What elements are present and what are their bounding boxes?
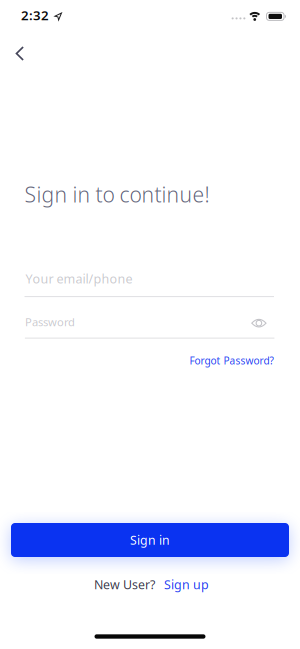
button[interactable]: Forgot Password? <box>189 354 273 367</box>
staticText: 2:32 <box>21 6 49 24</box>
staticText: New User? <box>94 576 155 593</box>
staticText: Sign in <box>130 532 170 548</box>
button[interactable]: Password <box>25 314 275 339</box>
staticText: Password <box>25 314 75 330</box>
button[interactable]: Back <box>0 32 38 75</box>
button[interactable]: Show password <box>245 312 273 334</box>
staticText: Sign up <box>164 576 209 593</box>
button[interactable]: Your email/phone <box>24 270 275 297</box>
staticText: Your email/phone <box>25 270 132 287</box>
button[interactable]: Sign up <box>164 576 209 593</box>
staticText: Forgot Password? <box>189 354 273 367</box>
button[interactable]: Sign in <box>11 523 289 557</box>
staticText: Sign in to continue! <box>24 180 209 209</box>
